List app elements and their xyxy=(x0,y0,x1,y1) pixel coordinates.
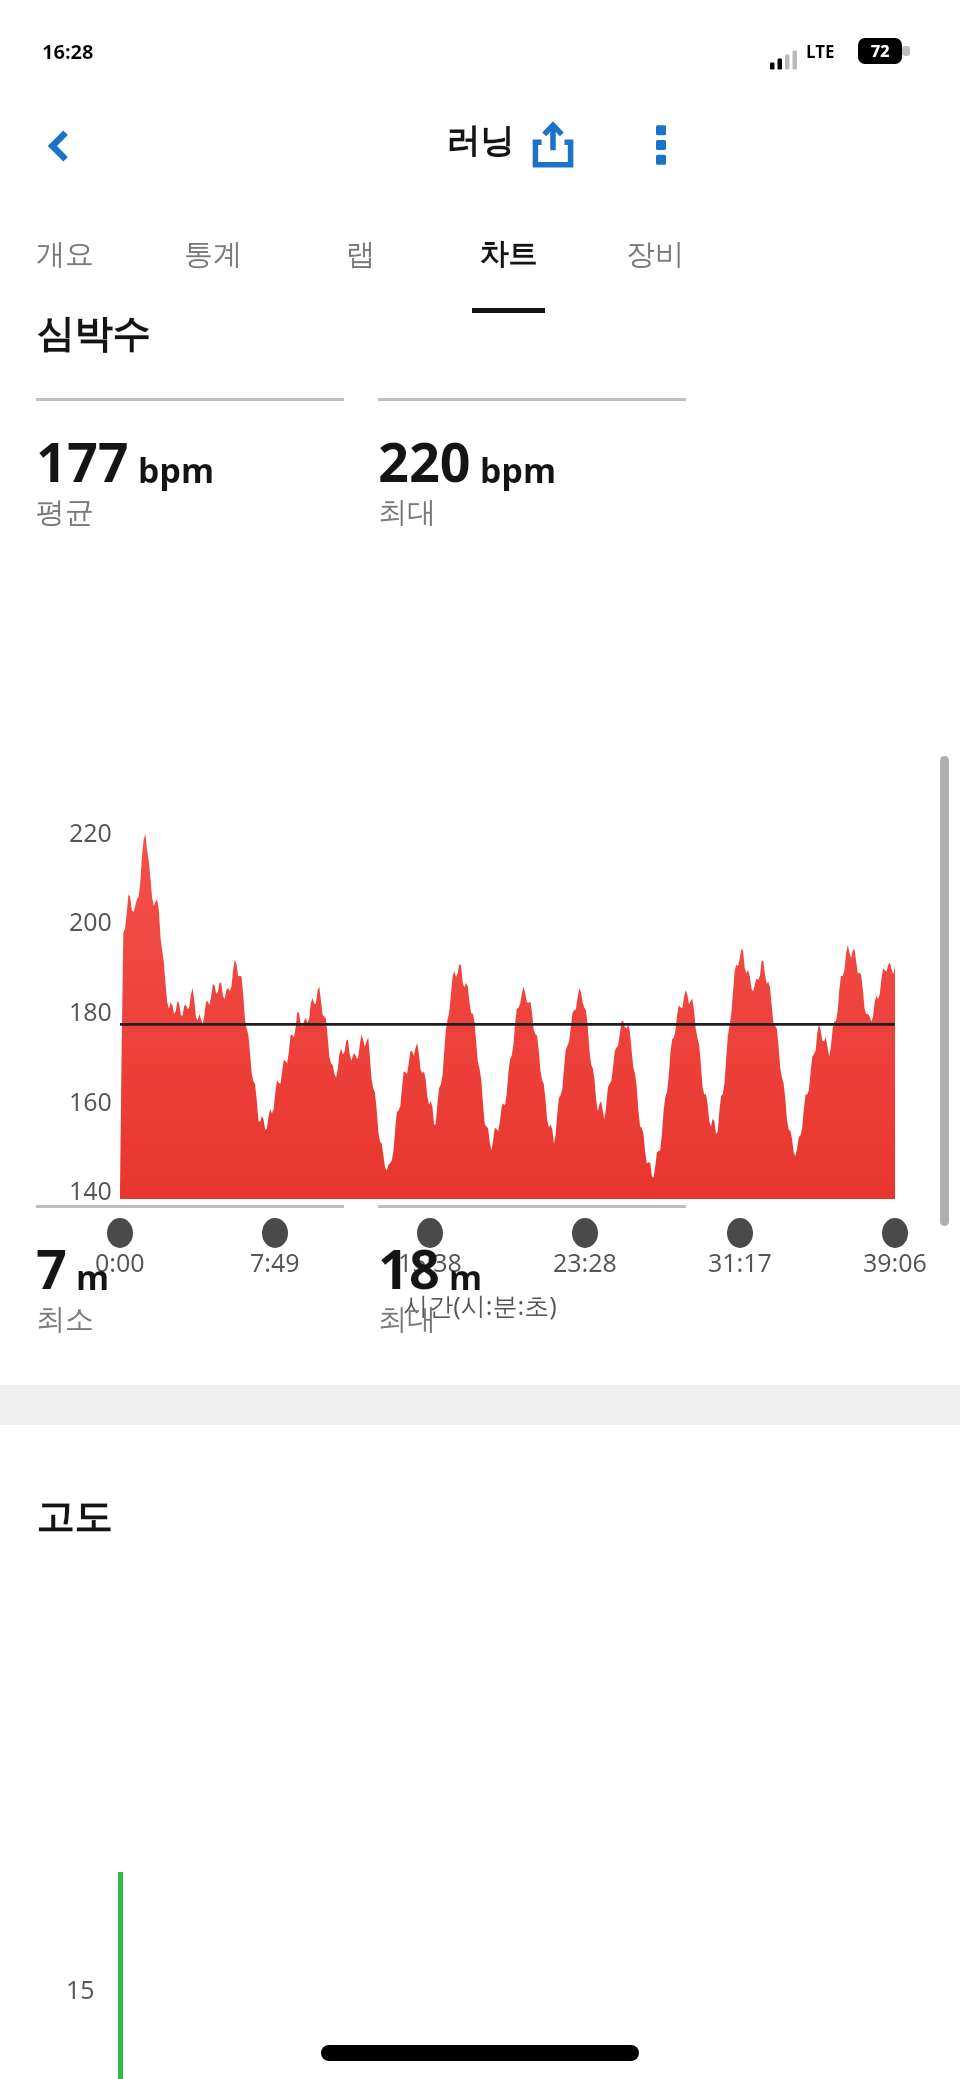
staticText: 0:00 xyxy=(95,1245,145,1279)
button[interactable]: More options xyxy=(620,104,702,186)
staticText: 72 xyxy=(871,40,890,62)
button[interactable]: 통계 xyxy=(151,208,275,300)
staticText: 16:28 xyxy=(42,38,94,65)
button[interactable]: Share xyxy=(512,104,594,186)
staticText: 18 xyxy=(378,1231,440,1305)
staticText: 평균 xyxy=(36,494,94,531)
staticText: 통계 xyxy=(184,236,242,273)
staticText: 15 xyxy=(66,1972,95,2006)
staticText: 랩 xyxy=(346,236,375,273)
staticText: 고도 xyxy=(36,1493,112,1541)
staticText: m xyxy=(76,1254,110,1300)
staticText: 177 xyxy=(36,424,129,498)
button[interactable]: 차트 xyxy=(446,208,570,300)
staticText: 160 xyxy=(69,1084,112,1118)
staticText: 차트 xyxy=(479,236,537,273)
staticText: 최소 xyxy=(36,1301,94,1338)
staticText: 러닝 xyxy=(0,120,960,163)
staticText: 개요 xyxy=(36,236,94,273)
button[interactable]: 장비 xyxy=(593,208,717,300)
button[interactable]: 개요 xyxy=(3,208,127,300)
button[interactable]: Back xyxy=(18,104,102,188)
staticText: 200 xyxy=(69,904,112,938)
staticText: 7 xyxy=(36,1231,67,1305)
staticText: 140 xyxy=(69,1173,112,1207)
staticText: bpm xyxy=(480,447,557,493)
staticText: 39:06 xyxy=(863,1245,927,1279)
staticText: 7:49 xyxy=(250,1245,300,1279)
staticText: m xyxy=(449,1254,483,1300)
staticText: 최대 xyxy=(378,1301,436,1338)
staticText: bpm xyxy=(138,447,215,493)
staticText: 장비 xyxy=(626,236,684,273)
staticText: 220 xyxy=(378,424,471,498)
button[interactable]: 랩 xyxy=(298,208,422,300)
staticText: 시간(시:분:초) xyxy=(0,1288,960,1322)
staticText: 31:17 xyxy=(708,1245,772,1279)
staticText: 최대 xyxy=(378,494,436,531)
staticText: 180 xyxy=(69,994,112,1028)
staticText: 심박수 xyxy=(36,310,150,358)
staticText: LTE xyxy=(806,40,835,63)
staticText: 220 xyxy=(69,815,112,849)
staticText: 15:38 xyxy=(398,1245,462,1279)
staticText: 23:28 xyxy=(553,1245,617,1279)
